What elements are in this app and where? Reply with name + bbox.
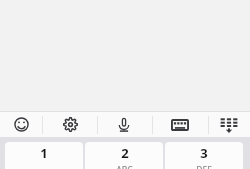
staticText: 3: [200, 144, 208, 162]
button[interactable]: 3: [165, 142, 243, 169]
button[interactable]: Settings: [42, 112, 98, 137]
button[interactable]: Text editing: [208, 112, 250, 137]
staticText: DEF: [196, 164, 212, 169]
staticText: ABC: [116, 164, 133, 169]
staticText: 1: [40, 144, 48, 162]
staticText: 2: [121, 144, 129, 162]
button[interactable]: Voice input: [97, 112, 151, 137]
button[interactable]: 1: [5, 142, 83, 169]
button[interactable]: Keyboard: [152, 112, 208, 137]
button[interactable]: 2: [85, 142, 163, 169]
button[interactable]: Emoji: [0, 112, 42, 137]
